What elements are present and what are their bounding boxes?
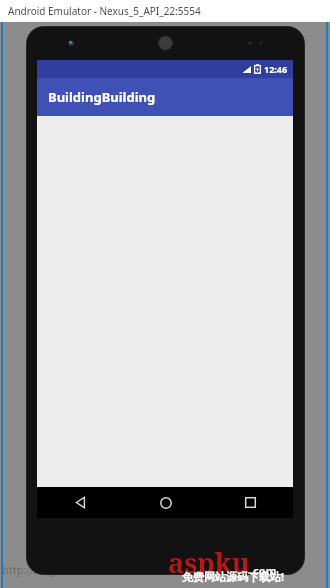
staticText: 免费网站源码下载站! <box>182 569 285 584</box>
staticText: BuildingBuilding <box>48 88 156 106</box>
button[interactable]: Recent apps <box>208 487 293 518</box>
staticText: .com <box>250 563 277 578</box>
staticText: Android Emulator - Nexus_5_API_22:5554 <box>8 4 201 18</box>
button[interactable]: Back <box>37 487 123 518</box>
button[interactable]: Home <box>123 487 208 518</box>
button[interactable]: BuildingBuilding <box>37 78 293 116</box>
staticText: http://blog <box>2 562 56 577</box>
staticText: 12:46 <box>264 63 288 75</box>
staticText: aspku <box>168 544 250 581</box>
